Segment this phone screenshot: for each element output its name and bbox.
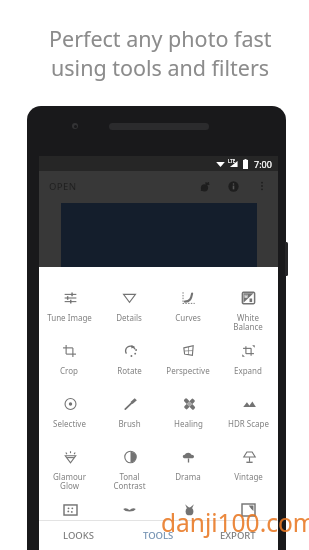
button[interactable]: Details xyxy=(99,292,159,333)
button[interactable]: White Balance xyxy=(218,292,278,333)
button[interactable]: Vintage xyxy=(218,451,278,492)
staticText: Frames xyxy=(234,524,262,535)
staticText: Perspective xyxy=(166,365,210,376)
button[interactable]: Grainy Film xyxy=(39,504,99,545)
staticText: Crop xyxy=(60,365,78,376)
staticText: LTE xyxy=(228,158,236,164)
button[interactable]: More options xyxy=(251,170,273,202)
button[interactable]: OPEN xyxy=(44,175,82,198)
button[interactable]: Tonal Contrast xyxy=(99,451,159,492)
button[interactable]: Curves xyxy=(158,292,218,333)
staticText: Selective xyxy=(53,418,86,429)
staticText: Perfect any photo fast xyxy=(49,24,272,53)
staticText: Tune Image xyxy=(47,312,92,323)
staticText: using tools and filters xyxy=(51,53,270,82)
staticText: HDR Scape xyxy=(228,418,269,429)
staticText: Vintage xyxy=(234,471,263,482)
button[interactable]: Brush xyxy=(99,398,159,439)
button[interactable]: Glamour Glow xyxy=(39,451,99,492)
button[interactable]: LOOKS xyxy=(39,521,118,550)
button[interactable]: Compare xyxy=(193,170,215,202)
button[interactable]: Perspective xyxy=(158,345,218,386)
staticText: Glamour Glow xyxy=(53,471,86,492)
staticText: Details xyxy=(116,312,142,323)
staticText: danji100.com xyxy=(161,506,309,539)
staticText: OPEN xyxy=(49,180,77,193)
staticText: White Balance xyxy=(233,312,263,333)
staticText: Rotate xyxy=(117,365,142,376)
button[interactable]: Crop xyxy=(39,345,99,386)
staticText: Grunge xyxy=(174,524,203,535)
staticText: TOOLS xyxy=(143,529,174,542)
button[interactable]: Info xyxy=(222,170,244,202)
staticText: Brush xyxy=(118,418,141,429)
staticText: EXPORT xyxy=(220,529,256,542)
staticText: Expand xyxy=(234,365,262,376)
button[interactable]: Selective xyxy=(39,398,99,439)
staticText: Grainy Film xyxy=(48,524,91,535)
staticText: LOOKS xyxy=(63,529,95,542)
button[interactable]: Healing xyxy=(158,398,218,439)
button[interactable]: Expand xyxy=(218,345,278,386)
staticText: Tonal Contrast xyxy=(113,471,146,492)
staticText: Curves xyxy=(175,312,201,323)
button[interactable]: EXPORT xyxy=(198,521,278,550)
button[interactable]: Grunge xyxy=(158,504,218,545)
button[interactable]: Frames xyxy=(218,504,278,545)
button[interactable]: Drama xyxy=(158,451,218,492)
staticText: Drama xyxy=(175,471,201,482)
button[interactable]: Retrolux xyxy=(99,504,159,545)
button[interactable]: Tune Image xyxy=(39,292,99,333)
button[interactable]: Rotate xyxy=(99,345,159,386)
staticText: Retrolux xyxy=(113,524,145,535)
staticText: 7:00 xyxy=(254,158,272,170)
button[interactable]: TOOLS xyxy=(118,521,198,550)
staticText: Healing xyxy=(174,418,203,429)
button[interactable]: HDR Scape xyxy=(218,398,278,439)
